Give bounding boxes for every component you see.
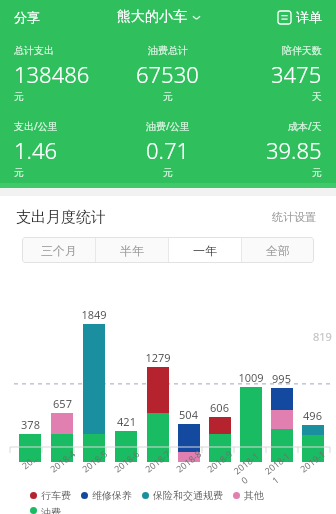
staticText: 1.46 xyxy=(14,135,58,165)
staticText: 496 xyxy=(303,408,322,423)
button[interactable]: 熊大的小车 xyxy=(111,4,207,30)
staticText: 保险和交通规费 xyxy=(153,489,223,502)
staticText: 油费总计 xyxy=(148,44,188,57)
staticText: 行车费 xyxy=(41,489,71,502)
staticText: 67530 xyxy=(136,59,199,89)
staticText: 支出/公里 xyxy=(14,119,58,133)
staticText: 三个月 xyxy=(41,243,77,258)
staticText: 606 xyxy=(210,400,229,415)
staticText: 39.85 xyxy=(266,135,322,165)
staticText: 成本/天 xyxy=(288,119,322,133)
button[interactable]: 全部 xyxy=(242,237,314,263)
button[interactable]: 半年 xyxy=(96,237,168,263)
staticText: 2018-10 xyxy=(231,448,270,486)
staticText: 657 xyxy=(53,396,72,411)
staticText: 1279 xyxy=(145,350,171,365)
staticText: 3475 xyxy=(271,59,322,89)
staticText: 陪伴天数 xyxy=(282,44,322,57)
staticText: 油费/公里 xyxy=(146,119,190,133)
button[interactable]: 分享 xyxy=(0,5,48,29)
staticText: 维修保养 xyxy=(92,489,132,502)
staticText: 2018-7 xyxy=(142,447,173,475)
staticText: 2018-11 xyxy=(262,448,301,486)
staticText: 元 xyxy=(163,90,173,103)
staticText: 2019-1 xyxy=(297,447,328,475)
staticText: 元 xyxy=(163,166,173,179)
staticText: 2018-8 xyxy=(173,447,204,475)
button[interactable]: 统计设置 xyxy=(268,206,320,228)
staticText: 全部 xyxy=(266,243,290,258)
staticText: 421 xyxy=(117,414,136,429)
staticText: 分享 xyxy=(14,9,40,25)
staticText: 2018-9 xyxy=(204,447,235,475)
staticText: 支出月度统计 xyxy=(16,208,106,227)
staticText: 2018-6 xyxy=(111,447,142,475)
staticText: 1849 xyxy=(81,307,107,322)
staticText: 0.71 xyxy=(146,135,190,165)
staticText: 995 xyxy=(272,371,291,386)
staticText: 元 xyxy=(312,166,322,179)
staticText: 元 xyxy=(14,166,24,179)
staticText: 1009 xyxy=(238,370,264,385)
staticText: 138486 xyxy=(14,59,90,89)
staticText: 天 xyxy=(312,90,322,103)
staticText: 378 xyxy=(21,417,40,432)
staticText: 819 xyxy=(313,329,332,344)
staticText: 总计支出 xyxy=(14,44,54,57)
staticText: 一年 xyxy=(193,243,217,258)
staticText: 油费 xyxy=(41,506,61,514)
button[interactable]: 一年 xyxy=(169,237,241,263)
staticText: 半年 xyxy=(120,243,144,258)
staticText: 2018-5 xyxy=(79,447,110,475)
staticText: 2018-4 xyxy=(47,447,78,475)
button[interactable]: 详单 xyxy=(270,5,336,29)
staticText: 熊大的小车 xyxy=(117,8,187,26)
staticText: 元 xyxy=(14,90,24,103)
staticText: 详单 xyxy=(296,9,322,25)
staticText: 20… xyxy=(19,451,41,471)
staticText: 其他 xyxy=(244,489,264,502)
button[interactable]: 三个月 xyxy=(22,237,95,263)
staticText: 统计设置 xyxy=(272,210,316,224)
staticText: 504 xyxy=(179,407,198,422)
